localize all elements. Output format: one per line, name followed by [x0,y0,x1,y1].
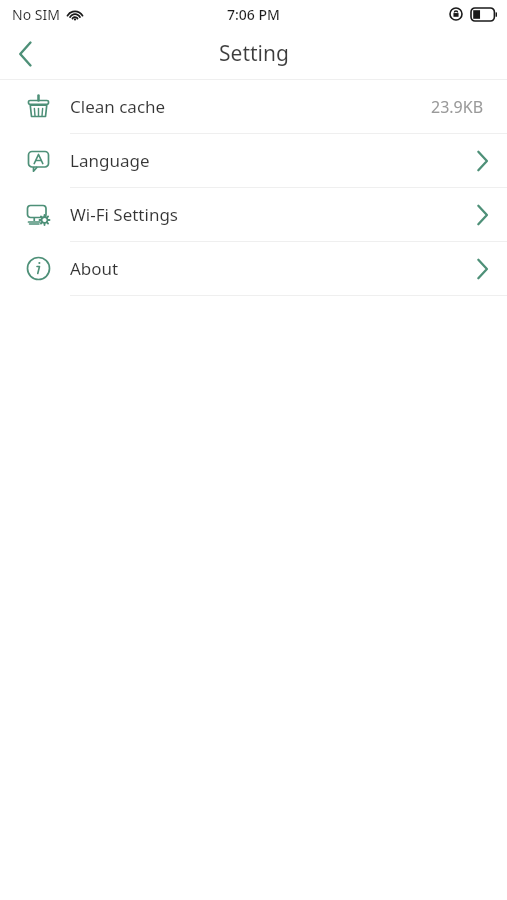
staticText: 23.9KB [431,96,484,118]
staticText: Setting [219,39,289,68]
staticText: Clean cache [70,95,166,118]
staticText: 7:06 PM [227,5,280,24]
button[interactable]: Back [0,28,52,79]
staticText: About [70,257,119,280]
button[interactable]: Language [0,134,507,187]
staticText: Wi-Fi Settings [70,203,178,226]
button[interactable]: Clean cache [0,80,507,133]
button[interactable]: Wi-Fi Settings [0,188,507,241]
staticText: Language [70,149,150,172]
button[interactable]: About [0,242,507,295]
staticText: No SIM [12,5,60,24]
